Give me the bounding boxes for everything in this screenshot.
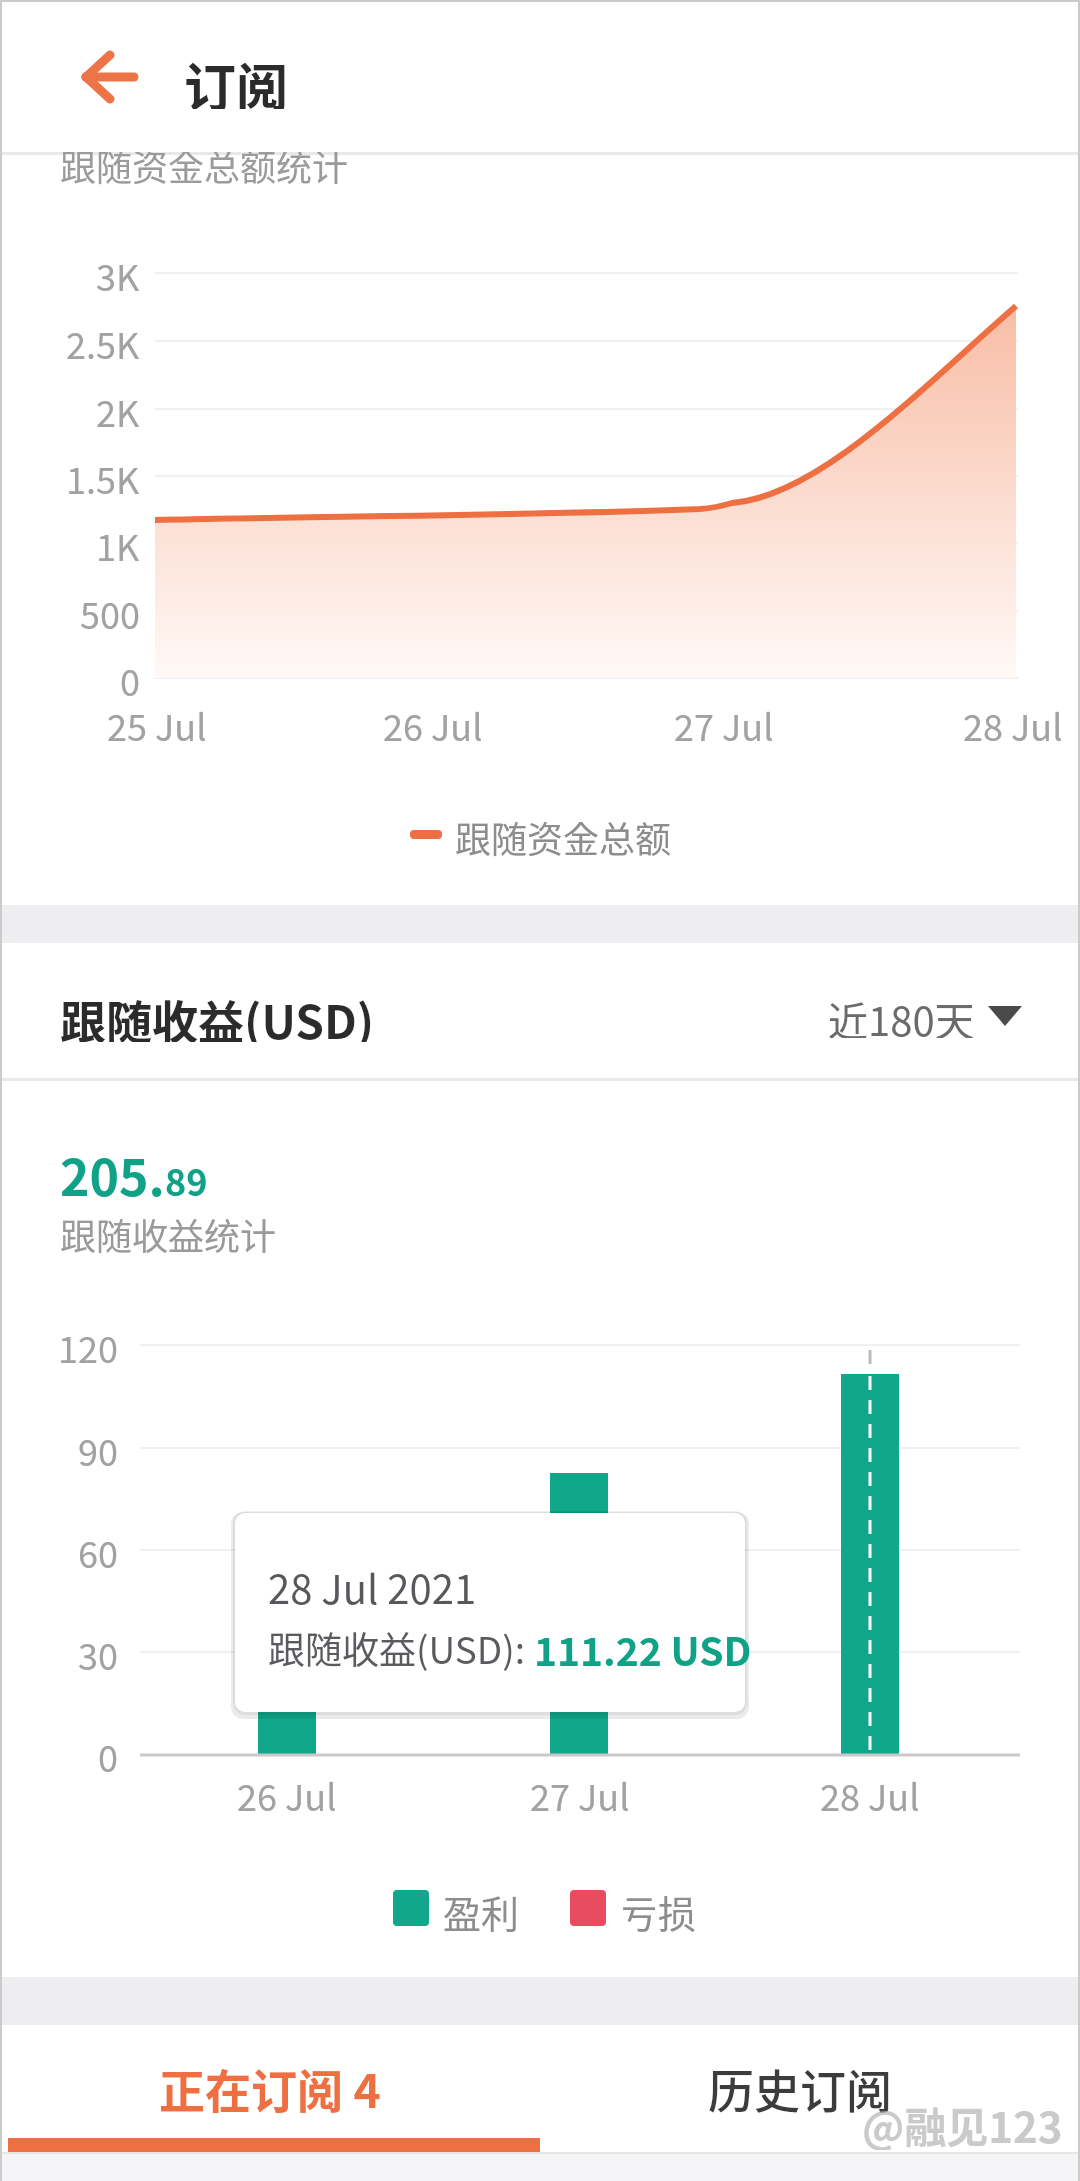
staticText: 0 xyxy=(98,1730,118,1778)
staticText: 25 Jul xyxy=(107,699,207,747)
staticText: 3K xyxy=(96,249,140,297)
button[interactable]: 正在订阅 4 xyxy=(0,0,460,60)
staticText: 亏损 xyxy=(620,1884,697,1932)
staticText: 27 Jul xyxy=(530,1769,630,1817)
staticText: 正在订阅 4 xyxy=(159,2055,381,2115)
staticText: 1.5K xyxy=(66,452,140,500)
staticText: @融见123 xyxy=(862,2094,1063,2150)
staticText: 26 Jul xyxy=(383,699,483,747)
staticText: 28 Jul xyxy=(820,1769,920,1817)
staticText: 60 xyxy=(78,1526,118,1574)
staticText: 跟随收益统计 xyxy=(60,1208,277,1256)
staticText: 历史订阅 xyxy=(708,2055,892,2115)
staticText: 89 xyxy=(165,1154,208,1206)
staticText: 2.5K xyxy=(66,317,140,365)
staticText: 0 xyxy=(120,654,140,702)
staticText: 500 xyxy=(80,587,140,635)
staticText: 跟随资金总额统计 xyxy=(60,139,349,189)
staticText: 跟随收益(USD) xyxy=(60,986,375,1042)
staticText: 30 xyxy=(78,1628,118,1676)
staticText: 2K xyxy=(96,385,140,433)
button[interactable]: 历史订阅 xyxy=(0,0,380,60)
staticText: 111.22 USD xyxy=(534,1621,752,1677)
staticText: 跟随收益(USD): xyxy=(268,1621,534,1675)
staticText: 205. xyxy=(60,1138,165,1210)
button[interactable]: 近180天 xyxy=(0,0,155,48)
staticText: 订阅 xyxy=(184,47,289,109)
staticText: 27 Jul xyxy=(674,699,774,747)
staticText: 26 Jul xyxy=(237,1769,337,1817)
button[interactable] xyxy=(70,40,150,114)
staticText: 1K xyxy=(96,519,140,567)
staticText: 28 Jul xyxy=(963,699,1063,747)
staticText: 近180天 xyxy=(828,990,975,1038)
staticText: 盈利 xyxy=(443,1884,520,1932)
staticText: 跟随资金总额 xyxy=(455,811,672,859)
staticText: 90 xyxy=(78,1424,118,1472)
staticText: 28 Jul 2021 xyxy=(268,1558,477,1606)
staticText: 120 xyxy=(58,1321,118,1369)
